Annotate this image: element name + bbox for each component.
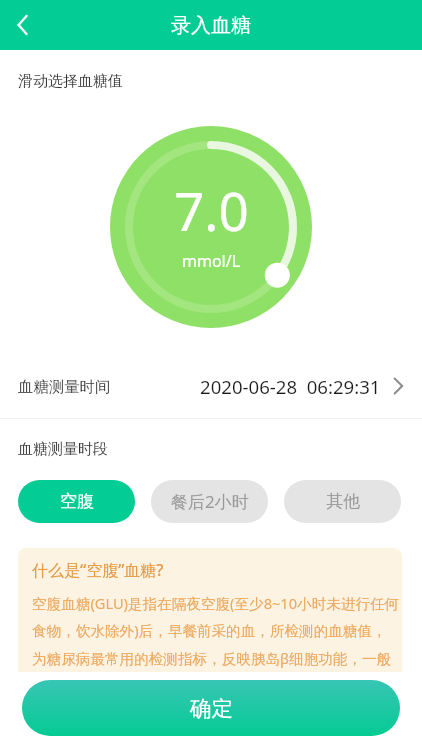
staticText: 什么是“空腹”血糖? (32, 559, 164, 581)
button[interactable]: Back (0, 2, 46, 48)
staticText: mmol/L (182, 250, 241, 272)
staticText: 确定 (190, 695, 233, 722)
staticText: 其他 (326, 491, 360, 512)
button[interactable]: 餐后2小时 (151, 480, 268, 523)
button[interactable]: 血糖测量时间 (0, 354, 422, 418)
staticText: 空腹 (60, 491, 94, 512)
staticText: 血糖测量时段 (18, 440, 108, 459)
button[interactable]: 其他 (284, 480, 401, 523)
button[interactable]: Blood glucose value 7.0 mmol/L (110, 126, 312, 328)
staticText: 血糖测量时间 (18, 377, 111, 396)
button[interactable]: 空腹 (18, 480, 135, 523)
staticText: 餐后2小时 (171, 490, 249, 513)
staticText: 空腹血糖(GLU)是指在隔夜空腹(至少8~10小时未进行任何 食物，饮水除外)后… (32, 593, 400, 669)
staticText: 7.0 (174, 174, 249, 246)
button[interactable]: 确定 (22, 680, 400, 736)
staticText: 滑动选择血糖值 (18, 72, 123, 91)
staticText: 2020-06-28 06:29:31 (200, 374, 381, 399)
staticText: 录入血糖 (171, 13, 251, 38)
